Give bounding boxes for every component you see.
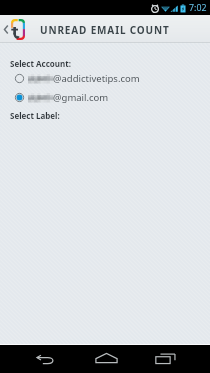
staticText: @addictivetips.com — [53, 72, 140, 85]
button[interactable]: Navigate up — [0, 15, 29, 43]
button[interactable]: Recent apps — [144, 348, 186, 369]
staticText: 7:02 — [189, 2, 207, 14]
staticText: @gmail.com — [53, 91, 109, 104]
button[interactable]: Home — [85, 347, 127, 368]
staticText: Select Account: — [10, 58, 71, 69]
staticText: UNREAD EMAIL COUNT — [40, 23, 170, 37]
button[interactable]: Back — [24, 349, 66, 370]
button[interactable]: @gmail.com — [0, 88, 210, 107]
button[interactable]: @addictivetips.com — [0, 69, 210, 88]
staticText: Select Label: — [10, 110, 60, 121]
